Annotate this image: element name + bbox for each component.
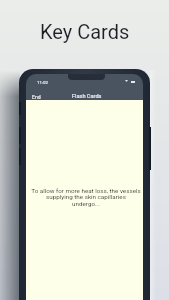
staticText: 11:02 — [37, 80, 48, 85]
other: Wi-Fi signal — [125, 80, 128, 82]
button[interactable]: To allow for more heat loss, the vessels… — [26, 100, 143, 300]
staticText: Flash Cards — [72, 93, 102, 100]
button[interactable]: End — [32, 94, 41, 100]
staticText: Key Cards — [40, 20, 130, 43]
staticText: To allow for more heat loss, the vessels… — [31, 187, 141, 208]
